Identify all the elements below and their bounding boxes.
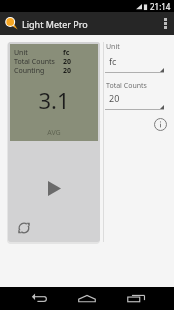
staticText: Light Meter Pro xyxy=(22,18,88,30)
staticText: fc xyxy=(63,48,70,58)
button[interactable]: Reset xyxy=(14,218,34,238)
staticText: 21:14 xyxy=(150,1,171,12)
staticText: 20 xyxy=(63,66,72,76)
button[interactable]: Home xyxy=(65,287,109,310)
button[interactable]: 20 xyxy=(105,92,164,110)
button[interactable]: Info xyxy=(151,115,169,133)
staticText: 20 xyxy=(63,57,72,67)
staticText: 3.1 xyxy=(10,85,98,115)
staticText: Total Counts xyxy=(106,81,147,91)
staticText: fc xyxy=(109,55,117,67)
button[interactable]: fc xyxy=(105,55,164,73)
staticText: Unit xyxy=(14,48,63,58)
staticText: 20 xyxy=(109,92,120,104)
staticText: Unit xyxy=(106,42,120,52)
button[interactable]: More options xyxy=(156,12,174,35)
button[interactable]: Start measuring xyxy=(41,175,67,201)
button[interactable]: Back xyxy=(17,287,61,310)
staticText: Total Counts xyxy=(14,57,63,67)
staticText: Counting xyxy=(14,66,63,76)
button[interactable]: Recents xyxy=(114,287,158,310)
staticText: AVG xyxy=(10,128,98,138)
